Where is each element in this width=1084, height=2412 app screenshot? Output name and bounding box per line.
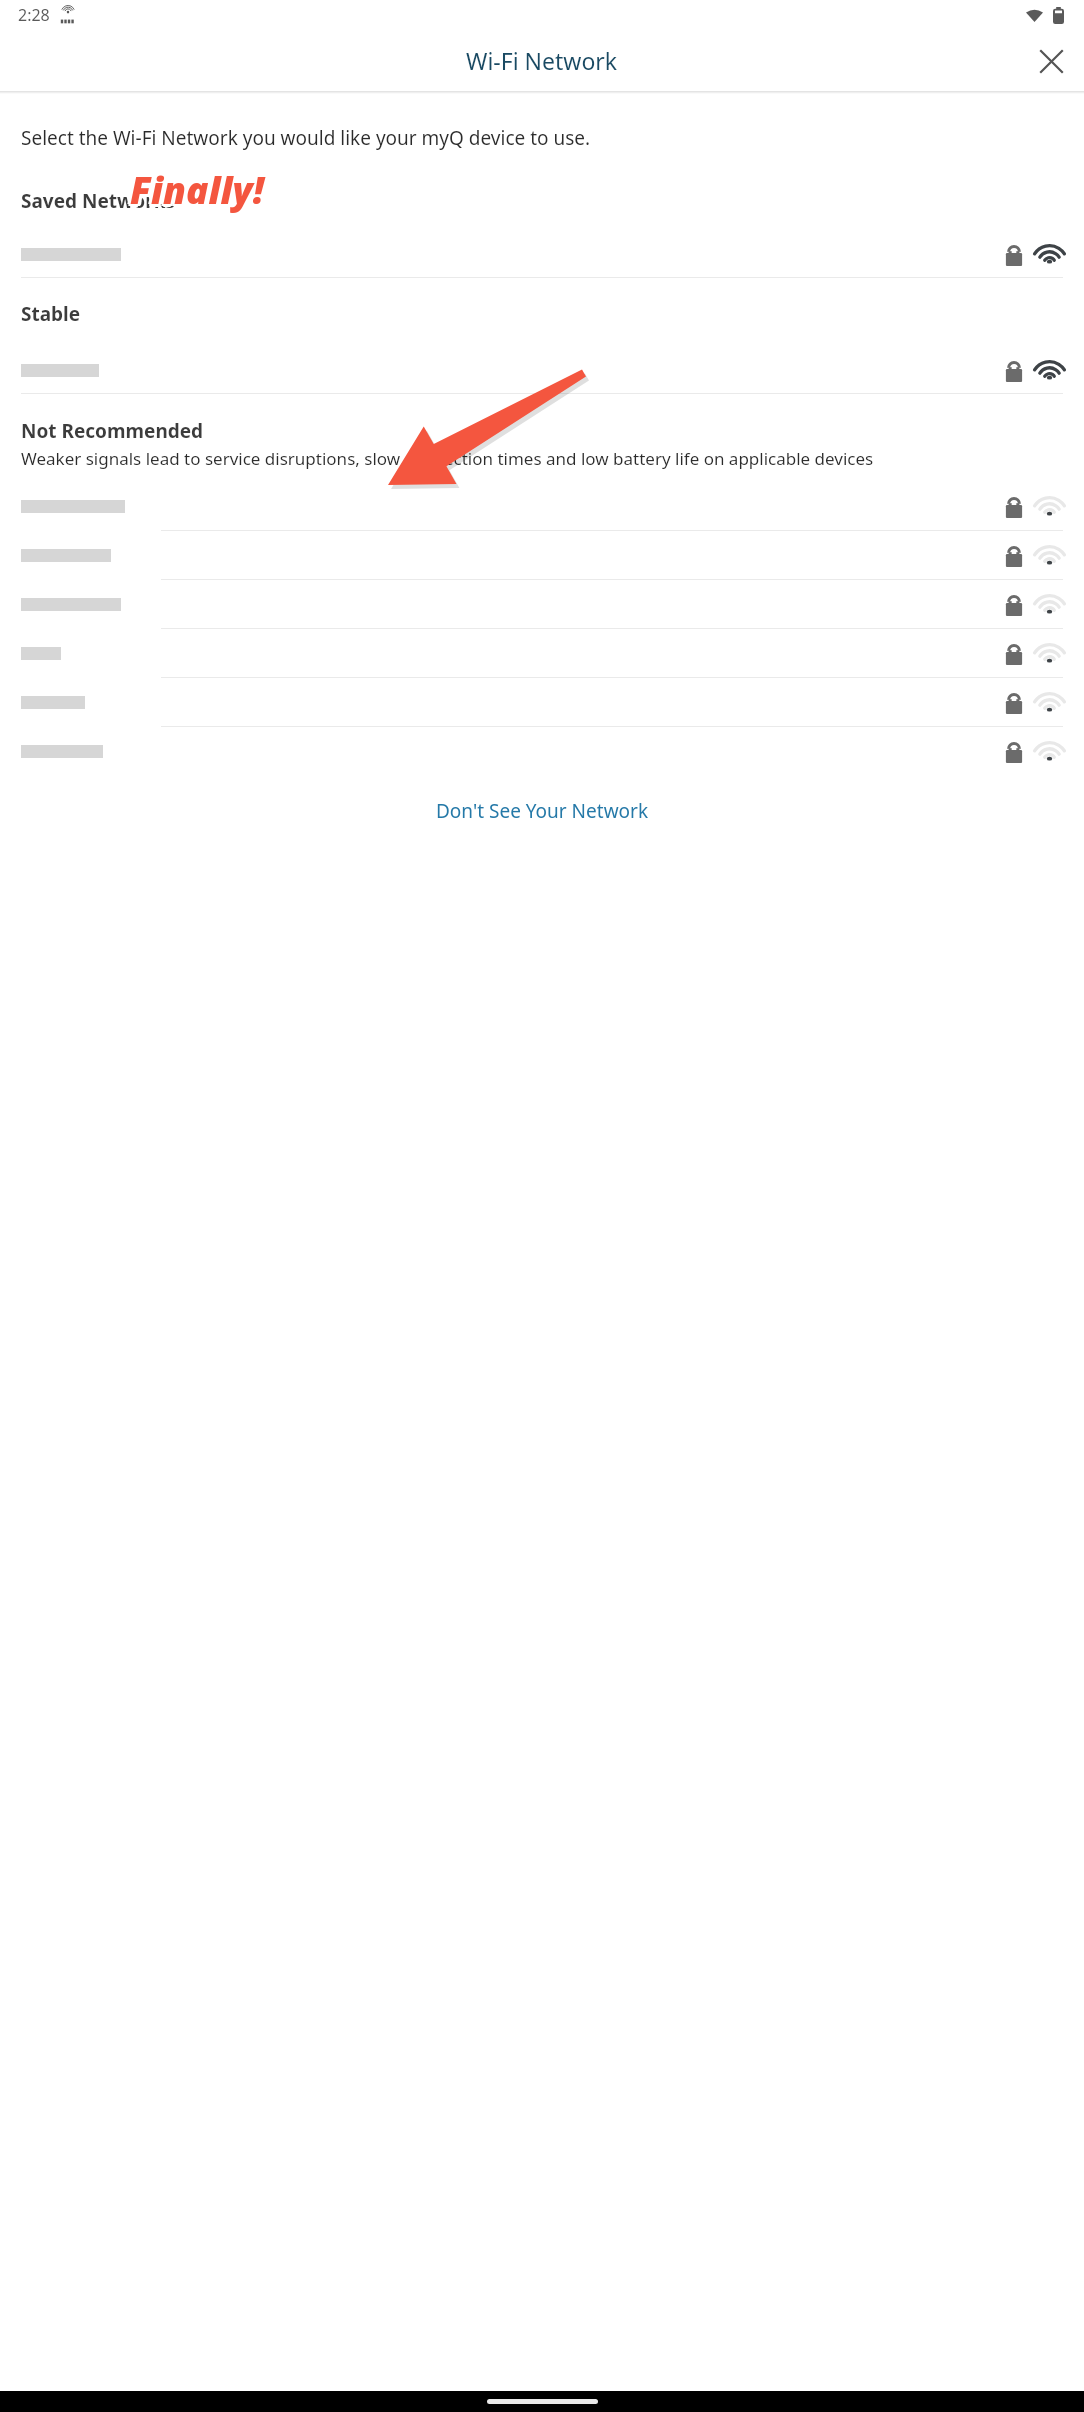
staticText: 2:28: [18, 4, 50, 26]
staticText: Finally!: [128, 166, 262, 216]
staticText: Finally!: [130, 164, 264, 214]
staticText: Stable: [21, 301, 81, 327]
staticText: Wi-Fi Network: [466, 45, 618, 76]
staticText: Not Recommended: [21, 418, 204, 444]
staticText: Finally!: [127, 164, 261, 214]
button[interactable]: [0, 678, 1084, 727]
button[interactable]: [0, 580, 1084, 629]
button[interactable]: [0, 629, 1084, 678]
staticText: Finally!: [133, 164, 267, 214]
staticText: Finally!: [128, 162, 262, 212]
staticText: Finally!: [130, 167, 264, 217]
staticText: Finally!: [132, 166, 266, 216]
button[interactable]: [0, 531, 1084, 580]
staticText: Select the Wi-Fi Network you would like …: [21, 125, 591, 151]
staticText: Saved Networks: [21, 188, 175, 214]
button[interactable]: Close: [1027, 37, 1075, 85]
button[interactable]: [0, 231, 1084, 278]
staticText: Finally!: [130, 161, 264, 211]
staticText: Weaker signals lead to service disruptio…: [21, 447, 874, 470]
staticText: Finally!: [132, 162, 266, 212]
button[interactable]: [0, 727, 1084, 775]
button[interactable]: Don't See Your Network: [0, 789, 1084, 833]
button[interactable]: [0, 347, 1084, 394]
button[interactable]: [0, 482, 1084, 531]
staticText: Don't See Your Network: [436, 798, 649, 824]
